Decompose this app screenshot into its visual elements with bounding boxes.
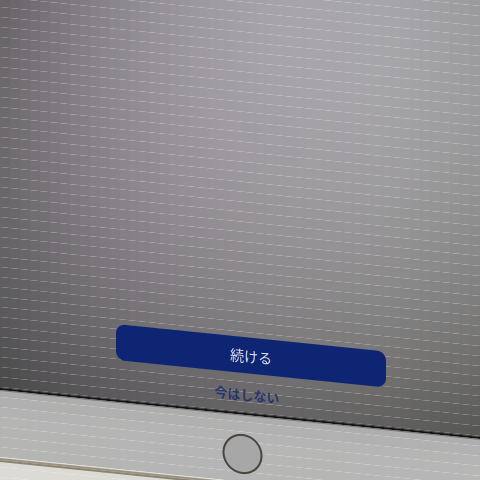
button[interactable]: Home xyxy=(0,0,39,38)
button[interactable]: 今はしない xyxy=(0,0,120,20)
staticText: 続ける xyxy=(114,8,156,28)
button[interactable]: 続ける xyxy=(0,0,270,36)
staticText: 今はしない xyxy=(27,1,92,19)
